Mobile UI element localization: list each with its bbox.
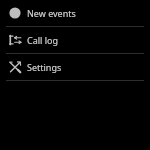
staticText: New events [27,7,76,19]
button[interactable]: Settings [0,54,150,80]
staticText: Settings [27,61,62,73]
button[interactable]: Call log [0,27,150,53]
staticText: Call log [27,34,59,46]
button[interactable]: New events [0,0,150,26]
